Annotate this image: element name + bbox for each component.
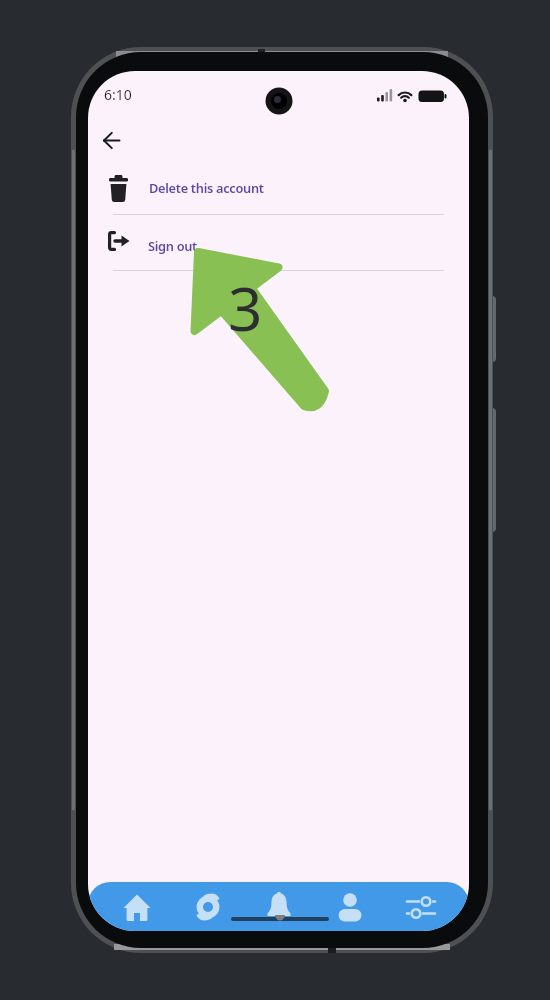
staticText: Delete this account: [149, 179, 264, 196]
button[interactable]: [92, 128, 132, 154]
button[interactable]: [385, 882, 456, 931]
button[interactable]: [101, 882, 172, 931]
button[interactable]: [172, 882, 243, 931]
button[interactable]: [314, 882, 385, 931]
button[interactable]: Delete this account: [88, 164, 469, 213]
staticText: Sign out: [148, 237, 198, 254]
staticText: 6:10: [104, 85, 132, 104]
staticText: 3: [228, 267, 263, 349]
button[interactable]: Sign out: [88, 213, 469, 270]
button[interactable]: [243, 882, 314, 931]
